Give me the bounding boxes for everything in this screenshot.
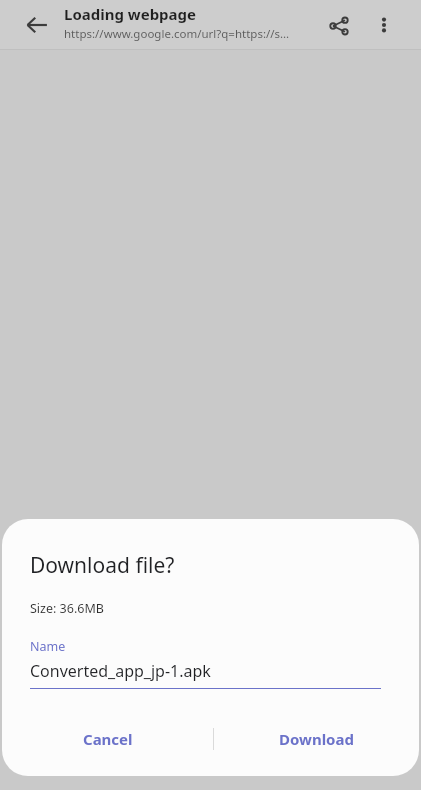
staticText: Download xyxy=(279,729,354,749)
button[interactable]: Back xyxy=(17,5,57,45)
staticText: https://www.google.com/url?q=https://s… xyxy=(64,26,290,42)
staticText: Cancel xyxy=(83,729,133,749)
button[interactable]: Cancel xyxy=(2,717,213,761)
staticText: Download file? xyxy=(30,551,175,580)
button[interactable]: Download xyxy=(214,717,419,761)
button[interactable]: More options xyxy=(364,5,404,45)
button[interactable]: Share xyxy=(318,5,360,47)
staticText: Size: 36.6MB xyxy=(30,600,104,617)
staticText: Name xyxy=(30,638,66,655)
button[interactable]: Converted_app_jp-1.apk xyxy=(30,660,381,689)
staticText: Converted_app_jp-1.apk xyxy=(30,660,211,682)
staticText: Loading webpage xyxy=(64,4,197,24)
